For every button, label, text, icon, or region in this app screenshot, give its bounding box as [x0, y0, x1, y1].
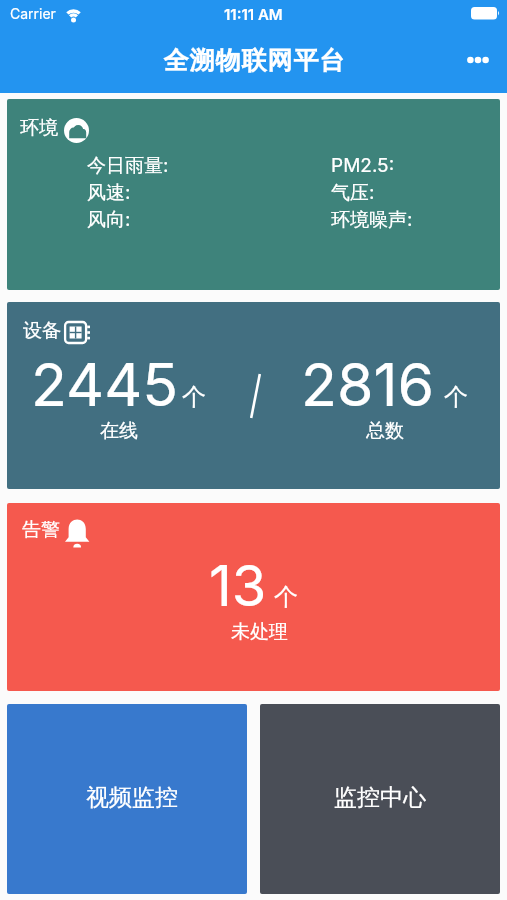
staticText: Carrier [10, 5, 56, 22]
staticText: 气压: [331, 181, 375, 205]
button[interactable]: 视频监控 [7, 704, 247, 894]
staticText: 环境噪声: [331, 208, 413, 232]
button[interactable]: 设备 [7, 302, 500, 489]
staticText: 个 [182, 382, 206, 412]
button[interactable]: 告警 [7, 503, 500, 691]
staticText: 在线 [100, 419, 138, 443]
staticText: 环境 [20, 116, 58, 140]
staticText: 告警 [22, 518, 60, 542]
staticText: 全溯物联网平台 [163, 45, 345, 76]
staticText: 风向: [87, 208, 131, 232]
staticText: 视频监控 [86, 783, 178, 812]
staticText: 总数 [366, 419, 404, 443]
staticText: 监控中心 [334, 783, 426, 812]
button[interactable] [462, 44, 494, 76]
staticText: 2445 [31, 349, 179, 420]
staticText: 今日雨量: [87, 154, 169, 178]
staticText: 风速: [87, 181, 131, 205]
staticText: 13 [209, 552, 267, 620]
staticText: 设备 [23, 319, 61, 343]
staticText: PM2.5: [331, 154, 395, 177]
staticText: 个 [444, 382, 468, 412]
staticText: 未处理 [231, 620, 288, 644]
button[interactable]: 环境 [7, 99, 500, 290]
staticText: 11:11 AM [224, 5, 283, 23]
staticText: 2816 [301, 349, 435, 420]
button[interactable]: 监控中心 [260, 704, 500, 894]
staticText: 个 [274, 582, 298, 612]
